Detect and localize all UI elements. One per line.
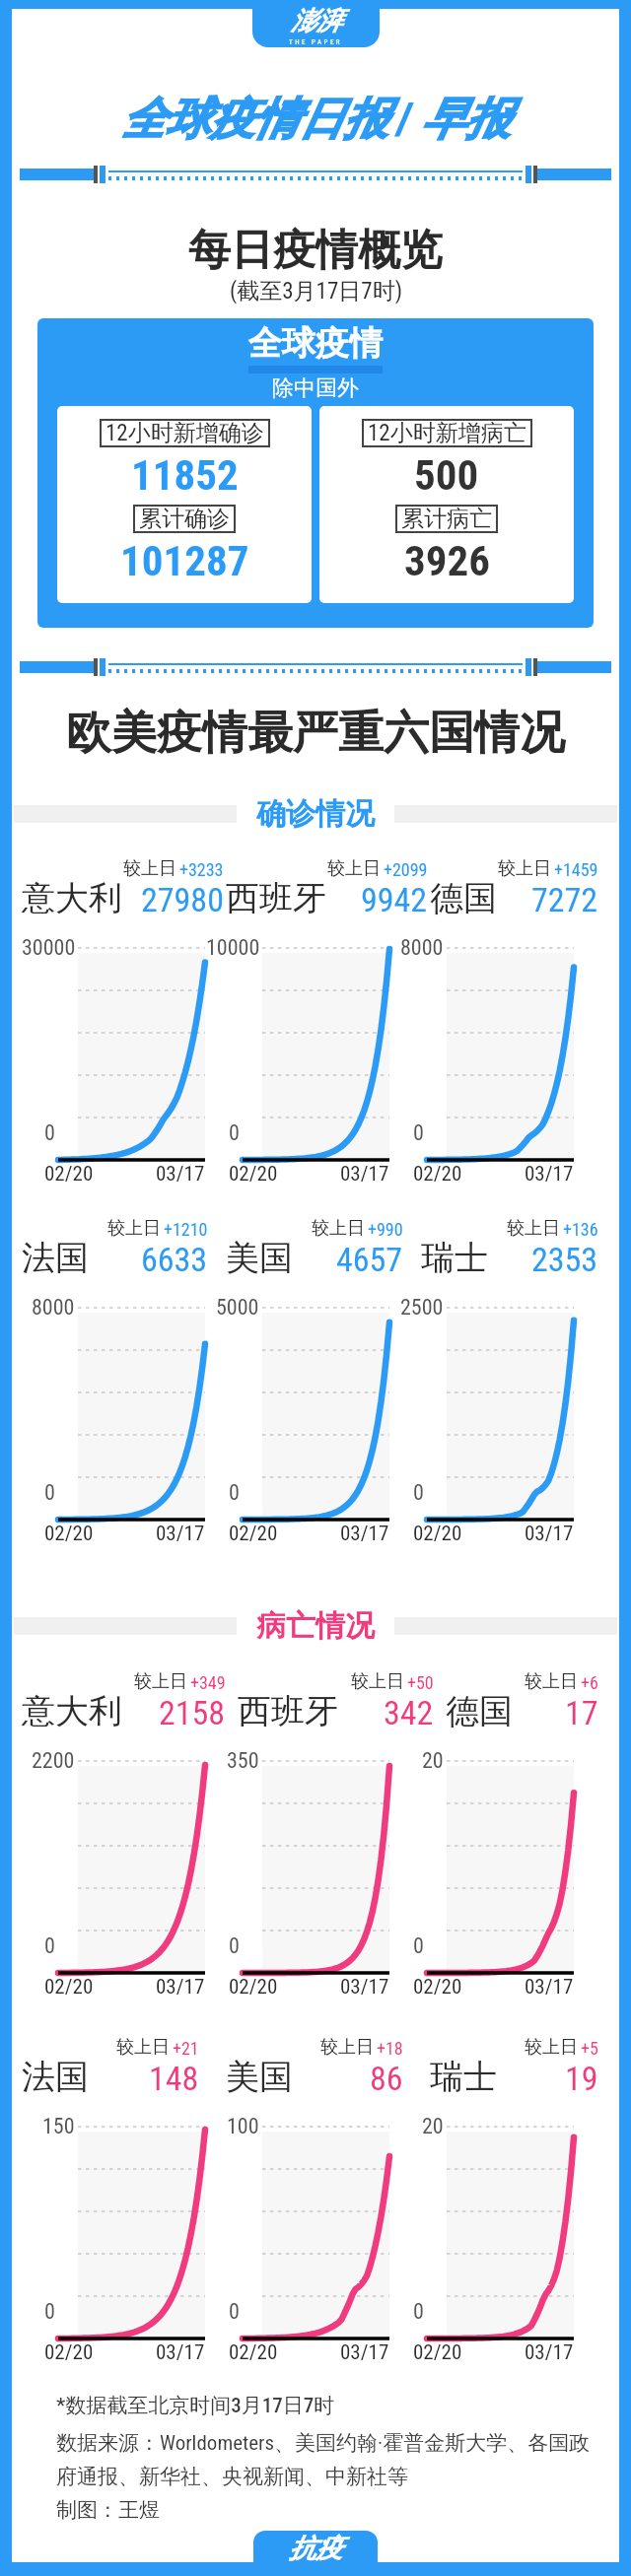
staticText: 较上日	[312, 1217, 365, 1240]
button[interactable]: 抗疫	[253, 2531, 378, 2566]
staticText: 03/17	[156, 1975, 205, 2000]
staticText: 较上日	[525, 2036, 578, 2059]
staticText: +1459	[554, 859, 598, 880]
staticText: 病亡情况	[256, 1607, 375, 1645]
staticText: 5000	[216, 1295, 259, 1321]
staticText: 30000	[22, 935, 75, 961]
staticText: 确诊情况	[256, 795, 375, 833]
staticText: (截至3月17日7时)	[230, 277, 402, 305]
staticText: 0	[413, 1480, 424, 1506]
staticText: 0	[44, 1480, 55, 1506]
staticText: 02/20	[413, 2340, 462, 2365]
staticText: 02/20	[44, 1975, 94, 2000]
staticText: 148	[149, 2059, 199, 2098]
staticText: 美国	[226, 2056, 293, 2098]
staticText: 03/17	[525, 1522, 574, 1546]
staticText: 意大利	[22, 877, 122, 919]
staticText: 03/17	[525, 1162, 574, 1186]
staticText: 抗疫	[289, 2532, 342, 2565]
staticText: 02/20	[229, 1522, 278, 1546]
staticText: 7272	[531, 880, 598, 919]
staticText: 瑞士	[430, 2056, 497, 2098]
staticText: 03/17	[525, 2340, 574, 2365]
staticText: 350	[227, 1748, 259, 1774]
staticText: 累计确诊	[139, 505, 230, 533]
staticText: 0	[44, 1933, 55, 1959]
staticText: 12小时新增病亡	[368, 419, 526, 447]
staticText: 3926	[404, 536, 490, 585]
staticText: 0	[229, 1120, 240, 1146]
staticText: +6	[581, 1672, 598, 1693]
staticText: +990	[368, 1219, 403, 1240]
staticText: 03/17	[340, 1522, 389, 1546]
staticText: 全球疫情日报 / 早报	[121, 92, 511, 148]
staticText: 11852	[131, 450, 239, 500]
staticText: 500	[414, 450, 479, 500]
staticText: 8000	[400, 935, 444, 961]
staticText: 0	[229, 1933, 240, 1959]
staticText: 8000	[32, 1295, 75, 1321]
staticText: 19	[565, 2059, 598, 2098]
staticText: 较上日	[507, 1217, 560, 1240]
staticText: 2353	[531, 1240, 598, 1279]
staticText: 较上日	[327, 857, 381, 880]
staticText: 美国	[226, 1237, 293, 1279]
staticText: 法国	[22, 2056, 89, 2098]
staticText: 数据来源：Worldometers、美国约翰·霍普金斯大学、各国政府通报、新华社…	[56, 2430, 594, 2490]
staticText: 西班牙	[238, 1690, 338, 1732]
staticText: 全球疫情	[248, 322, 383, 365]
staticText: 100	[227, 2114, 259, 2139]
staticText: +2099	[384, 859, 428, 880]
staticText: 除中国外	[272, 374, 359, 402]
staticText: 欧美疫情最严重六国情况	[66, 705, 565, 762]
staticText: 27980	[141, 880, 224, 919]
staticText: 03/17	[340, 1975, 389, 2000]
staticText: 2500	[400, 1295, 444, 1321]
staticText: +136	[563, 1219, 598, 1240]
staticText: 02/20	[229, 2340, 278, 2365]
staticText: 较上日	[134, 1670, 187, 1693]
staticText: 0	[44, 2299, 55, 2325]
staticText: 较上日	[320, 2036, 374, 2059]
staticText: 02/20	[44, 2340, 94, 2365]
staticText: 03/17	[156, 1162, 205, 1186]
staticText: 17	[565, 1693, 598, 1732]
staticText: 0	[413, 1933, 424, 1959]
staticText: 03/17	[525, 1975, 574, 2000]
staticText: +1210	[164, 1219, 208, 1240]
staticText: THE PAPER	[289, 38, 343, 46]
button[interactable]: The Paper logo	[252, 0, 380, 47]
staticText: 法国	[22, 1237, 89, 1279]
staticText: 20	[422, 2114, 444, 2139]
staticText: 瑞士	[421, 1237, 488, 1279]
staticText: 9942	[361, 880, 428, 919]
staticText: 02/20	[44, 1522, 94, 1546]
staticText: 150	[42, 2114, 75, 2139]
staticText: 较上日	[525, 1670, 578, 1693]
staticText: +50	[407, 1672, 434, 1693]
staticText: +5	[581, 2038, 598, 2059]
staticText: 0	[413, 1120, 424, 1146]
staticText: 342	[384, 1693, 434, 1732]
staticText: 86	[370, 2059, 403, 2098]
staticText: 0	[229, 2299, 240, 2325]
staticText: 03/17	[156, 2340, 205, 2365]
staticText: 02/20	[413, 1162, 462, 1186]
staticText: 0	[413, 2299, 424, 2325]
staticText: 12小时新增确诊	[105, 419, 264, 447]
staticText: 较上日	[123, 857, 176, 880]
staticText: 2200	[32, 1748, 75, 1774]
staticText: 德国	[446, 1690, 513, 1732]
staticText: *数据截至北京时间3月17日7时	[56, 2393, 335, 2418]
staticText: 02/20	[44, 1162, 94, 1186]
staticText: 2158	[159, 1693, 226, 1732]
staticText: 每日疫情概览	[188, 224, 443, 277]
staticText: 6633	[141, 1240, 208, 1279]
staticText: 制图：王煜	[56, 2497, 160, 2523]
staticText: 02/20	[413, 1975, 462, 2000]
staticText: +3233	[179, 859, 224, 880]
staticText: +21	[173, 2038, 199, 2059]
staticText: 较上日	[107, 1217, 161, 1240]
staticText: 西班牙	[226, 877, 326, 919]
staticText: 0	[44, 1120, 55, 1146]
